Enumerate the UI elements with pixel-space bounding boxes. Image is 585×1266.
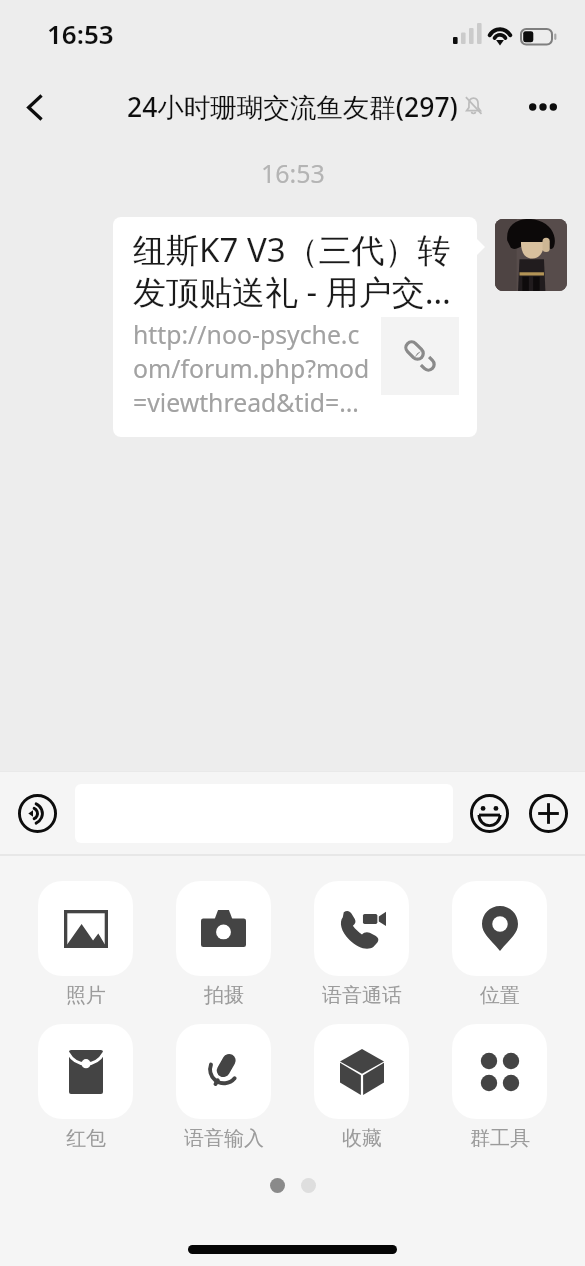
staticText: 16:53 bbox=[47, 16, 114, 51]
staticText: om/forum.php?mod bbox=[133, 351, 370, 385]
staticText: 语音通话 bbox=[322, 983, 402, 1008]
staticText: 发顶贴送礼 - 用户交… bbox=[133, 269, 451, 314]
staticText: 红包 bbox=[66, 1126, 106, 1151]
button[interactable]: 语音输入 bbox=[176, 1024, 271, 1151]
staticText: 照片 bbox=[66, 983, 106, 1008]
button[interactable]: Back bbox=[5, 78, 63, 136]
button[interactable]: 语音通话 bbox=[314, 881, 409, 1008]
button[interactable]: 拍摄 bbox=[176, 881, 271, 1008]
staticText: http://noo-psyche.c bbox=[133, 317, 360, 351]
button[interactable]: 红包 bbox=[38, 1024, 133, 1151]
staticText: 群工具 bbox=[470, 1126, 530, 1151]
button[interactable]: More options bbox=[515, 79, 571, 135]
button[interactable]: Profile avatar bbox=[495, 219, 567, 291]
button[interactable]: 纽斯K7 V3（三代）转 bbox=[113, 217, 477, 437]
staticText: =viewthread&tid=… bbox=[133, 385, 359, 419]
button[interactable]: Emoji bbox=[469, 793, 509, 833]
button[interactable]: 群工具 bbox=[452, 1024, 547, 1151]
button[interactable]: More functions bbox=[528, 793, 568, 833]
staticText: 位置 bbox=[480, 983, 520, 1008]
staticText: 语音输入 bbox=[184, 1126, 264, 1151]
staticText: 收藏 bbox=[342, 1126, 382, 1151]
staticText: 16:53 bbox=[261, 156, 325, 190]
staticText: 24小时珊瑚交流鱼友群(297) bbox=[127, 89, 458, 125]
staticText: 拍摄 bbox=[204, 983, 244, 1008]
button[interactable]: 照片 bbox=[38, 881, 133, 1008]
button[interactable]: Voice message bbox=[17, 793, 57, 833]
button[interactable]: 收藏 bbox=[314, 1024, 409, 1151]
button[interactable]: 位置 bbox=[452, 881, 547, 1008]
staticText: 纽斯K7 V3（三代）转 bbox=[133, 227, 451, 272]
